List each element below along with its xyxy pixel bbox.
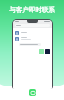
button[interactable] xyxy=(19,43,41,46)
button[interactable] xyxy=(15,36,50,41)
button[interactable] xyxy=(15,30,50,35)
button[interactable]: App icon xyxy=(29,89,36,96)
button[interactable]: Search xyxy=(15,23,50,28)
button[interactable]: Green swatch xyxy=(39,49,44,54)
button[interactable]: Navy swatch xyxy=(45,49,50,54)
staticText: 与客户即时联系 xyxy=(9,6,55,14)
